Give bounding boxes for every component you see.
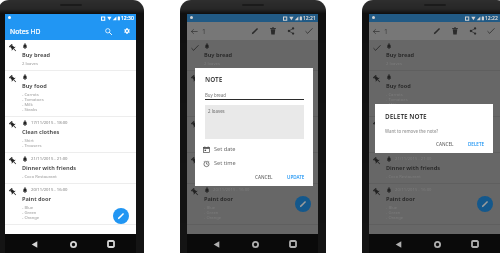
button[interactable]: 20/11/2015 - 16:00 — [369, 184, 500, 225]
staticText: 12:22 — [485, 15, 498, 22]
staticText: Set time — [214, 159, 236, 167]
button[interactable]: Home — [67, 238, 79, 250]
staticText: Clean clothes — [386, 128, 424, 136]
button[interactable]: 17/11/2015 - 18:00 — [369, 117, 500, 153]
button[interactable]: DELETE — [465, 139, 488, 149]
button[interactable]: Delete — [448, 24, 462, 38]
button[interactable]: Share — [466, 24, 480, 38]
button[interactable]: Recents — [287, 238, 299, 250]
button[interactable]: Set date — [203, 145, 302, 153]
staticText: - Trousers — [204, 143, 224, 148]
staticText: - Shirt — [22, 138, 34, 143]
button[interactable]: Edit — [430, 24, 444, 38]
staticText: Paint door — [22, 195, 52, 203]
button[interactable]: Back — [28, 238, 40, 250]
button[interactable]: Buy food — [369, 71, 500, 117]
staticText: Clean clothes — [22, 128, 60, 136]
staticText: - Carrots — [386, 92, 403, 97]
staticText: - Blue — [204, 205, 216, 210]
button[interactable]: Recents — [105, 238, 117, 250]
button[interactable]: Buy bread — [187, 40, 318, 71]
staticText: Buy bread — [386, 51, 415, 59]
button[interactable]: Search — [101, 24, 115, 38]
button[interactable]: Buy bread — [5, 40, 136, 71]
button[interactable]: Close — [188, 25, 201, 38]
button[interactable]: Back — [210, 238, 222, 250]
staticText: - Tomatoes — [204, 97, 226, 102]
button[interactable]: Buy food — [187, 71, 318, 117]
button[interactable]: New note — [477, 196, 493, 212]
staticText: - Steaks — [204, 107, 220, 112]
button[interactable]: CANCEL — [433, 139, 457, 149]
staticText: - Steaks — [22, 107, 38, 112]
button[interactable]: CANCEL — [252, 172, 276, 182]
button[interactable]: 17/11/2015 - 18:00 — [187, 117, 318, 153]
button[interactable]: New note — [295, 196, 311, 212]
staticText: Set date — [214, 145, 236, 153]
staticText: - Milk — [204, 102, 215, 107]
button[interactable]: Done — [484, 24, 498, 38]
staticText: 21/11/2015 - 21:00 — [213, 156, 250, 162]
button[interactable]: Settings — [120, 24, 134, 38]
staticText: - Carrots — [22, 92, 39, 97]
button[interactable]: Done — [302, 24, 316, 38]
staticText: - Orange — [204, 215, 222, 220]
button[interactable]: Share — [284, 24, 298, 38]
button[interactable]: Home — [249, 238, 261, 250]
button[interactable]: 21/11/2015 - 21:00 — [369, 153, 500, 184]
staticText: NOTE — [205, 75, 223, 84]
button[interactable]: Recents — [469, 238, 481, 250]
staticText: CANCEL — [436, 141, 454, 147]
staticText: Dinner with friends — [386, 164, 440, 172]
staticText: Buy food — [22, 82, 47, 90]
button[interactable]: 20/11/2015 - 16:00 — [5, 184, 136, 225]
staticText: 20/11/2015 - 16:00 — [213, 187, 250, 193]
staticText: 2 loaves — [386, 61, 402, 66]
button[interactable]: Edit — [248, 24, 262, 38]
button[interactable]: Buy food — [5, 71, 136, 117]
staticText: 1 — [202, 27, 206, 36]
button[interactable]: 21/11/2015 - 21:00 — [5, 153, 136, 184]
button[interactable]: New note — [113, 208, 129, 224]
button[interactable]: 20/11/2015 - 16:00 — [187, 184, 318, 225]
button[interactable]: Close — [370, 25, 383, 38]
staticText: Buy bread — [22, 51, 51, 59]
button[interactable]: 21/11/2015 - 21:00 — [187, 153, 318, 184]
staticText: - Green — [22, 210, 37, 215]
staticText: - Tomatoes — [386, 97, 408, 102]
staticText: 1 — [384, 27, 388, 36]
staticText: Dinner with friends — [204, 164, 258, 172]
staticText: 20/11/2015 - 16:00 — [395, 187, 432, 193]
staticText: - Coco Restaurant — [386, 174, 421, 179]
button[interactable]: Delete — [266, 24, 280, 38]
staticText: 12:30 — [121, 15, 134, 22]
button[interactable]: 17/11/2015 - 18:00 — [5, 117, 136, 153]
button[interactable]: Set time — [203, 159, 302, 167]
staticText: CANCEL — [255, 174, 273, 180]
staticText: - Orange — [22, 215, 40, 220]
staticText: DELETE — [468, 141, 485, 147]
staticText: - Tomatoes — [22, 97, 44, 102]
staticText: DELETE NOTE — [385, 112, 427, 121]
staticText: 2 loaves — [204, 61, 220, 66]
staticText: UPDATE — [287, 174, 305, 180]
staticText: Paint door — [204, 195, 234, 203]
staticText: - Trousers — [22, 143, 42, 148]
staticText: - Shirt — [204, 138, 216, 143]
button[interactable]: Back — [392, 238, 404, 250]
staticText: 12:21 — [303, 15, 316, 22]
staticText: Dinner with friends — [22, 164, 76, 172]
staticText: - Blue — [386, 205, 398, 210]
button[interactable]: UPDATE — [284, 172, 308, 182]
staticText: - Carrots — [204, 92, 221, 97]
staticText: 21/11/2015 - 21:00 — [395, 156, 432, 162]
staticText: - Coco Restaurant — [22, 174, 57, 179]
staticText: 20/11/2015 - 16:00 — [31, 187, 68, 193]
button[interactable]: Buy bread — [369, 40, 500, 71]
button[interactable]: Home — [431, 238, 443, 250]
